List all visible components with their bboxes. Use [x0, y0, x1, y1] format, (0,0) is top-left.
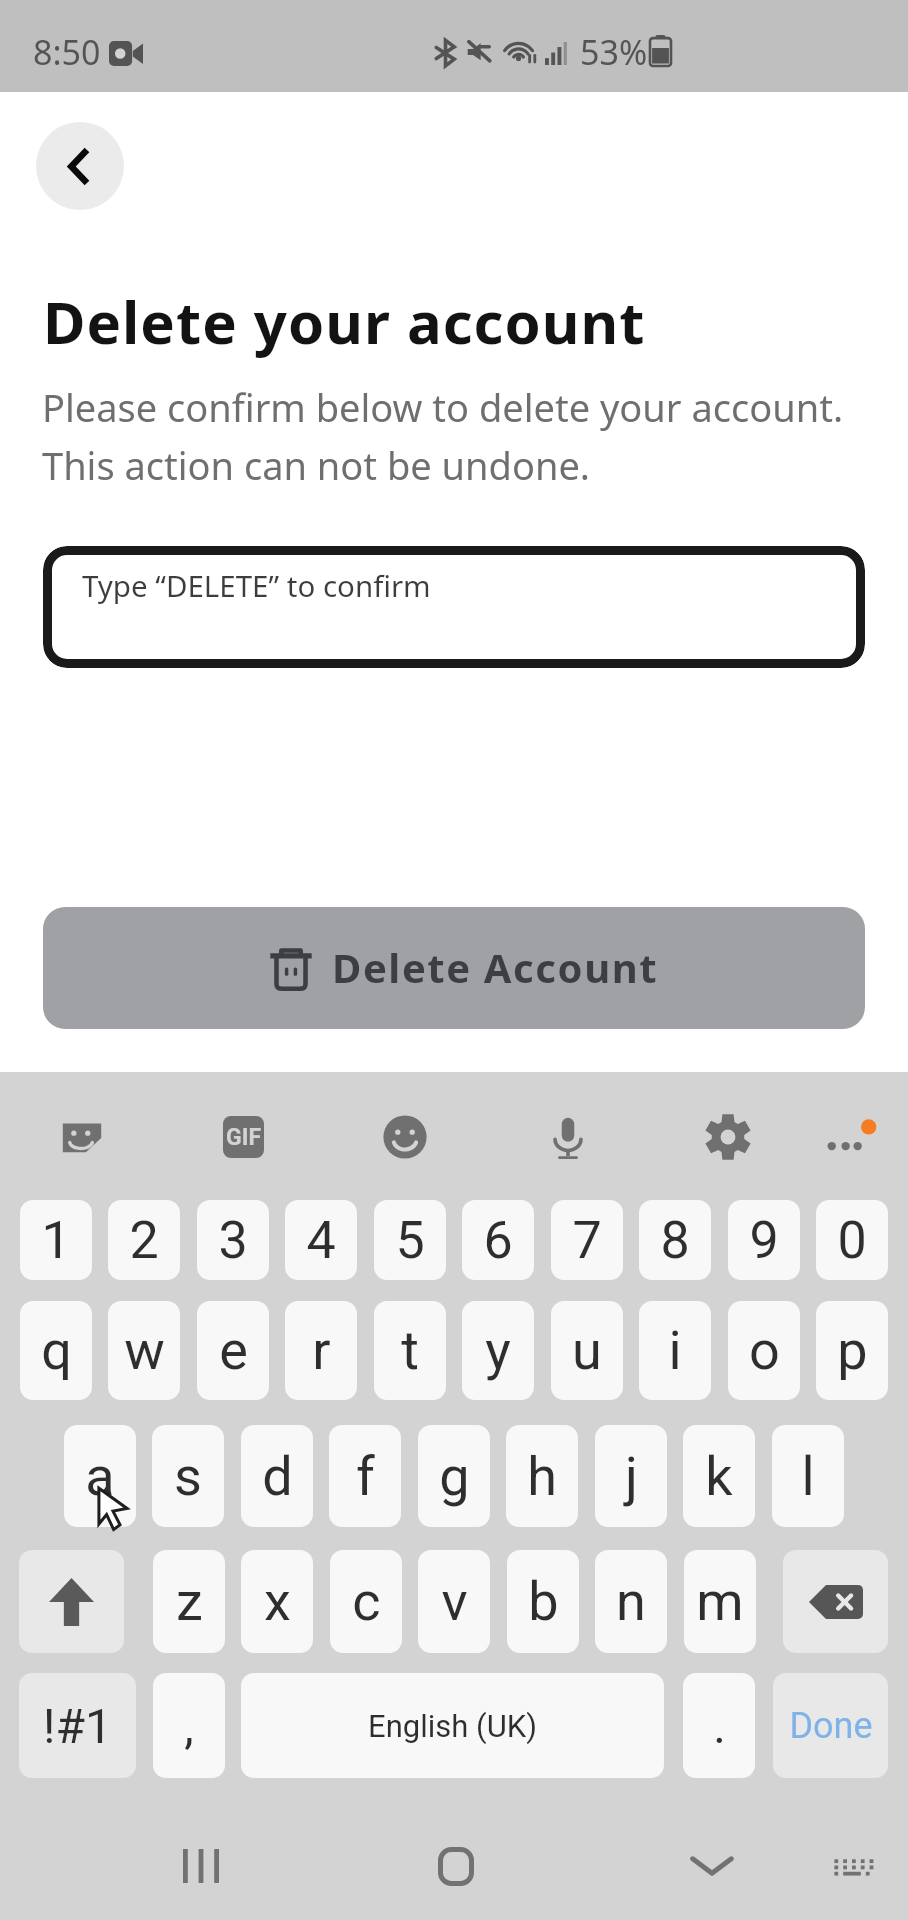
staticText: m	[696, 1570, 744, 1633]
button[interactable]: x	[241, 1550, 313, 1653]
button[interactable]: a	[64, 1425, 136, 1527]
button[interactable]: Backspace	[783, 1550, 888, 1653]
staticText: English (UK)	[368, 1708, 537, 1744]
staticText: v	[441, 1570, 468, 1633]
button[interactable]: v	[418, 1550, 490, 1653]
button[interactable]: Back	[36, 122, 124, 210]
button[interactable]: Recent apps	[159, 1824, 243, 1908]
button[interactable]: Settings	[690, 1099, 766, 1175]
button[interactable]: u	[551, 1301, 623, 1400]
button[interactable]: Stickers	[44, 1099, 120, 1175]
button[interactable]: Delete Account	[43, 907, 865, 1029]
staticText: .	[713, 1698, 726, 1754]
staticText: 3	[218, 1210, 248, 1271]
staticText: 2	[129, 1210, 159, 1271]
button[interactable]: h	[506, 1425, 578, 1527]
staticText: 53%	[580, 29, 648, 75]
button[interactable]: 6	[462, 1200, 534, 1280]
staticText: p	[837, 1319, 868, 1382]
button[interactable]: e	[197, 1301, 269, 1400]
button[interactable]: d	[241, 1425, 313, 1527]
button[interactable]: GIF	[219, 1112, 267, 1162]
staticText: Done	[789, 1705, 873, 1747]
button[interactable]: Voice input	[530, 1099, 606, 1175]
button[interactable]: 0	[816, 1200, 888, 1280]
staticText: t	[401, 1319, 419, 1382]
button[interactable]: z	[153, 1550, 225, 1653]
button[interactable]: More options	[811, 1099, 887, 1175]
button[interactable]: o	[728, 1301, 800, 1400]
button[interactable]: y	[462, 1301, 534, 1400]
staticText: g	[439, 1445, 470, 1508]
staticText: k	[705, 1445, 733, 1508]
button[interactable]: Shift	[19, 1550, 124, 1653]
staticText: 4	[306, 1210, 336, 1271]
button[interactable]: 4	[285, 1200, 357, 1280]
staticText: 7	[572, 1210, 602, 1271]
staticText: o	[749, 1319, 780, 1382]
staticText: 8	[660, 1210, 690, 1271]
staticText: j	[625, 1445, 638, 1508]
button[interactable]: n	[595, 1550, 667, 1653]
button[interactable]: r	[285, 1301, 357, 1400]
staticText: c	[352, 1570, 381, 1633]
staticText: i	[668, 1319, 682, 1382]
button[interactable]: 2	[108, 1200, 180, 1280]
staticText: 5	[395, 1210, 425, 1271]
button[interactable]: 3	[197, 1200, 269, 1280]
button[interactable]: Type “DELETE” to confirm	[43, 546, 865, 668]
staticText: Please confirm below to delete your acco…	[42, 381, 844, 491]
staticText: s	[174, 1445, 202, 1508]
staticText: q	[41, 1319, 72, 1382]
button[interactable]: English (UK)	[241, 1673, 664, 1778]
button[interactable]: Hide keyboard	[670, 1824, 754, 1908]
button[interactable]: b	[507, 1550, 579, 1653]
button[interactable]: p	[816, 1301, 888, 1400]
button[interactable]: 9	[728, 1200, 800, 1280]
staticText: 1	[41, 1210, 71, 1271]
button[interactable]: f	[329, 1425, 401, 1527]
button[interactable]: j	[595, 1425, 667, 1527]
button[interactable]: Home	[414, 1824, 498, 1908]
button[interactable]: ,	[153, 1673, 225, 1778]
staticText: w	[124, 1319, 165, 1382]
button[interactable]: g	[418, 1425, 490, 1527]
staticText: !#1	[43, 1698, 112, 1754]
staticText: n	[616, 1570, 646, 1633]
staticText: a	[85, 1445, 115, 1508]
button[interactable]: i	[639, 1301, 711, 1400]
staticText: x	[264, 1570, 291, 1633]
staticText: Type “DELETE” to confirm	[82, 565, 431, 605]
staticText: d	[262, 1445, 293, 1508]
staticText: z	[176, 1570, 203, 1633]
button[interactable]: m	[684, 1550, 756, 1653]
staticText: GIF	[226, 1124, 262, 1151]
button[interactable]: q	[20, 1301, 92, 1400]
button[interactable]: Emoji	[367, 1099, 443, 1175]
staticText: b	[528, 1570, 559, 1633]
button[interactable]: !#1	[19, 1673, 136, 1778]
staticText: Delete your account	[43, 282, 646, 361]
staticText: l	[801, 1445, 815, 1508]
staticText: f	[356, 1445, 375, 1508]
staticText: 9	[749, 1210, 779, 1271]
button[interactable]: 7	[551, 1200, 623, 1280]
staticText: y	[485, 1319, 511, 1382]
button[interactable]: k	[683, 1425, 755, 1527]
staticText: h	[527, 1445, 557, 1508]
button[interactable]: w	[108, 1301, 180, 1400]
button[interactable]: .	[683, 1673, 755, 1778]
button[interactable]: Done	[773, 1673, 888, 1778]
staticText: 0	[837, 1210, 867, 1271]
staticText: Delete Account	[332, 940, 659, 994]
button[interactable]: l	[772, 1425, 844, 1527]
button[interactable]: 5	[374, 1200, 446, 1280]
button[interactable]: c	[330, 1550, 402, 1653]
staticText: r	[312, 1319, 331, 1382]
button[interactable]: 1	[20, 1200, 92, 1280]
button[interactable]: 8	[639, 1200, 711, 1280]
button[interactable]: Change keyboard	[810, 1824, 894, 1908]
staticText: 6	[483, 1210, 513, 1271]
button[interactable]: s	[152, 1425, 224, 1527]
button[interactable]: t	[374, 1301, 446, 1400]
